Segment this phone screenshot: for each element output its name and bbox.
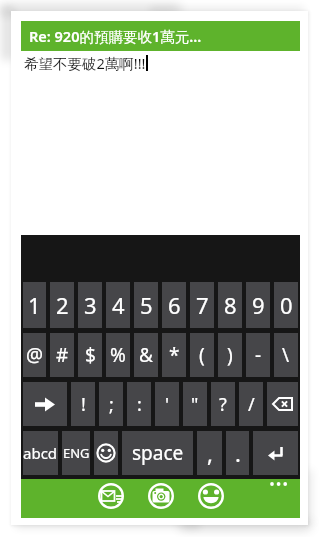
staticText: 3 bbox=[84, 290, 97, 320]
button[interactable]: # bbox=[50, 333, 74, 377]
button[interactable]: ? bbox=[211, 382, 235, 426]
staticText: / bbox=[248, 392, 255, 417]
staticText: - bbox=[255, 342, 262, 368]
button[interactable]: : bbox=[127, 382, 151, 426]
staticText: @ bbox=[26, 342, 44, 368]
staticText: $ bbox=[85, 342, 96, 368]
staticText: abcd bbox=[23, 443, 58, 463]
staticText: 6 bbox=[168, 290, 181, 320]
button[interactable]: abcd bbox=[23, 431, 58, 475]
button[interactable]: 8 bbox=[218, 282, 242, 328]
button[interactable]: ; bbox=[99, 382, 123, 426]
button[interactable]: 9 bbox=[246, 282, 270, 328]
button[interactable]: @ bbox=[23, 333, 46, 377]
button[interactable]: 1 bbox=[23, 282, 46, 328]
button[interactable]: 6 bbox=[162, 282, 186, 328]
button[interactable]: & bbox=[134, 333, 158, 377]
button[interactable] bbox=[148, 483, 174, 509]
staticText: 希望不要破2萬啊!!! bbox=[24, 53, 146, 73]
button[interactable]: * bbox=[162, 333, 186, 377]
staticText: , bbox=[207, 438, 213, 468]
staticText: ? bbox=[219, 392, 227, 417]
button[interactable] bbox=[94, 431, 118, 475]
button[interactable] bbox=[269, 480, 289, 488]
button[interactable]: 0 bbox=[274, 282, 298, 328]
button[interactable] bbox=[267, 382, 298, 426]
button[interactable]: ENG bbox=[62, 431, 90, 475]
staticText: . bbox=[235, 438, 241, 468]
staticText: ( bbox=[199, 342, 205, 368]
button[interactable]: 4 bbox=[106, 282, 130, 328]
button[interactable]: ( bbox=[190, 333, 214, 377]
button[interactable]: , bbox=[197, 431, 222, 475]
button[interactable]: 3 bbox=[78, 282, 102, 328]
button[interactable]: space bbox=[122, 431, 193, 475]
button[interactable] bbox=[98, 483, 124, 509]
staticText: Re: 920的預購要收1萬元... bbox=[29, 26, 202, 46]
button[interactable] bbox=[23, 382, 67, 426]
button[interactable]: 2 bbox=[50, 282, 74, 328]
staticText: ENG bbox=[63, 444, 90, 462]
staticText: ; bbox=[109, 392, 114, 417]
staticText: 2 bbox=[56, 290, 69, 320]
button[interactable]: Re: 920的預購要收1萬元... bbox=[21, 21, 300, 51]
staticText: % bbox=[110, 342, 126, 368]
staticText: 5 bbox=[140, 290, 153, 320]
staticText: 0 bbox=[280, 290, 293, 320]
button[interactable]: . bbox=[226, 431, 249, 475]
button[interactable]: $ bbox=[78, 333, 102, 377]
button[interactable]: / bbox=[239, 382, 263, 426]
button[interactable] bbox=[253, 431, 298, 475]
staticText: 4 bbox=[112, 290, 125, 320]
staticText: 7 bbox=[196, 290, 209, 320]
button[interactable]: - bbox=[246, 333, 270, 377]
button[interactable]: 5 bbox=[134, 282, 158, 328]
staticText: & bbox=[139, 342, 153, 368]
button[interactable]: \ bbox=[274, 333, 298, 377]
staticText: # bbox=[56, 342, 69, 368]
staticText: * bbox=[169, 342, 180, 368]
staticText: ) bbox=[227, 342, 233, 368]
button[interactable]: % bbox=[106, 333, 130, 377]
button[interactable]: ! bbox=[71, 382, 95, 426]
button[interactable] bbox=[198, 483, 224, 509]
staticText: \ bbox=[282, 342, 290, 368]
button[interactable]: " bbox=[183, 382, 207, 426]
staticText: space bbox=[132, 440, 184, 466]
button[interactable]: 希望不要破2萬啊!!! bbox=[21, 51, 300, 235]
button[interactable]: ) bbox=[218, 333, 242, 377]
button[interactable]: ' bbox=[155, 382, 179, 426]
button[interactable]: 7 bbox=[190, 282, 214, 328]
staticText: " bbox=[191, 392, 199, 417]
staticText: 8 bbox=[224, 290, 237, 320]
staticText: ' bbox=[165, 392, 170, 417]
staticText: 1 bbox=[28, 290, 41, 320]
staticText: ! bbox=[81, 392, 86, 417]
staticText: : bbox=[137, 392, 142, 417]
staticText: 9 bbox=[252, 290, 265, 320]
